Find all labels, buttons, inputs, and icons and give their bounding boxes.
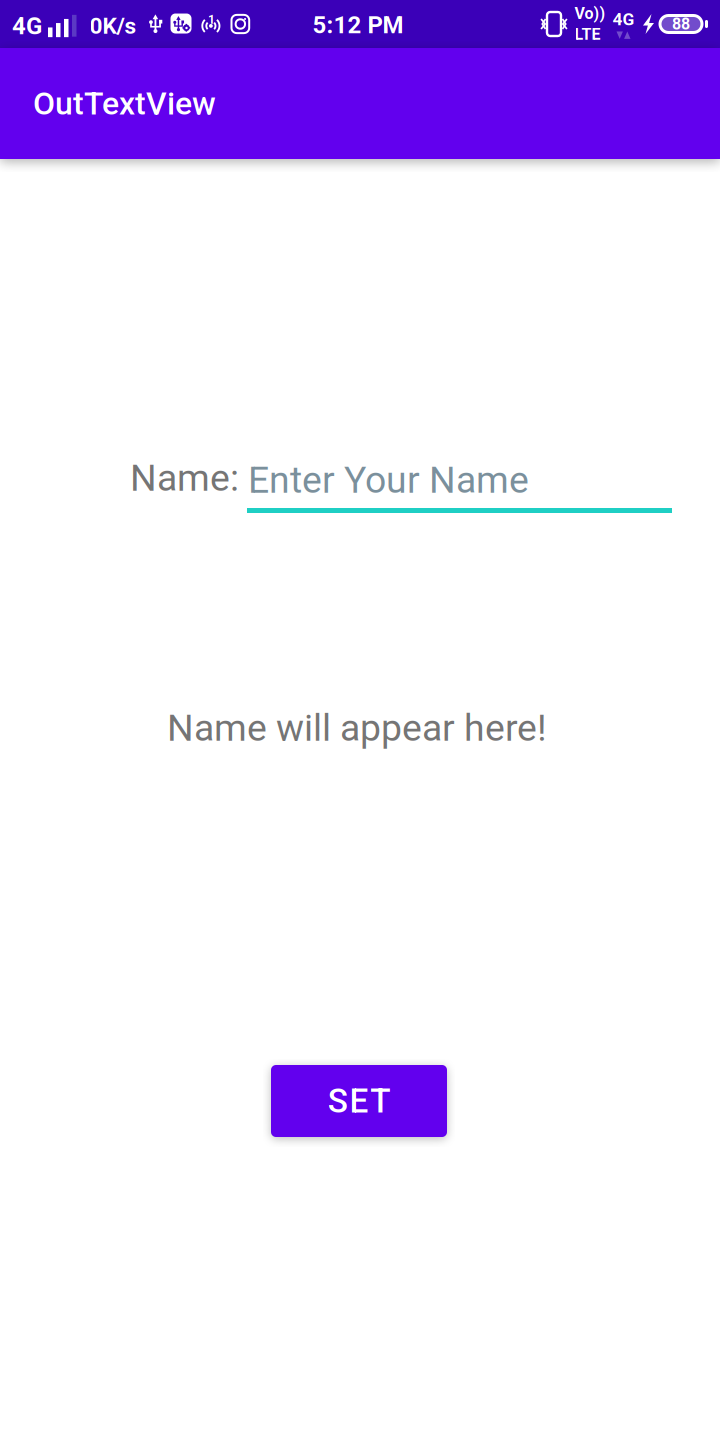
- staticText: 1: [208, 13, 215, 27]
- staticText: 4G: [612, 9, 634, 29]
- staticText: 88: [672, 15, 690, 33]
- staticText: 0K/s: [89, 13, 136, 39]
- staticText: OutTextView: [33, 85, 216, 122]
- staticText: SET: [328, 1081, 390, 1121]
- button[interactable]: SET: [271, 1065, 447, 1137]
- staticText: 4G: [12, 12, 42, 40]
- staticText: 5:12 PM: [312, 11, 403, 39]
- staticText: LTE: [574, 25, 600, 44]
- staticText: Name:: [130, 456, 239, 500]
- staticText: Name will appear here!: [167, 706, 547, 750]
- staticText: Vo)): [574, 4, 605, 23]
- staticText: Enter Your Name: [248, 458, 529, 502]
